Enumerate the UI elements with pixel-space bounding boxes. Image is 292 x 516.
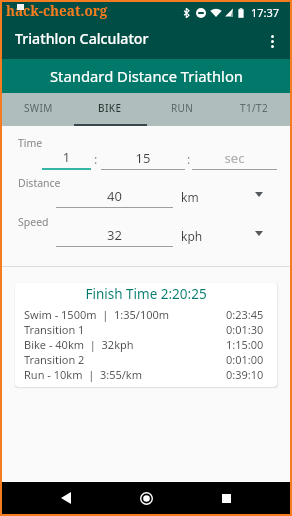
staticText: 15 <box>101 149 185 167</box>
button[interactable]: 15 <box>101 149 185 170</box>
staticText: Run - 10km | 3:55/km <box>24 367 143 382</box>
staticText: kph <box>181 228 203 244</box>
staticText: Distance <box>18 176 61 190</box>
staticText: 1 <box>42 148 91 166</box>
staticText: Time <box>18 136 43 150</box>
button[interactable]: BIKE <box>74 93 146 126</box>
staticText: 0:01:00 <box>226 352 264 367</box>
button[interactable]: SWIM <box>2 93 74 126</box>
staticText: 0:23:45 <box>226 307 264 322</box>
button[interactable]: Back <box>50 482 82 514</box>
button[interactable]: Open unit dropdown <box>240 184 278 204</box>
button[interactable]: Standard Distance Triathlon <box>2 59 290 93</box>
staticText: Transition 2 <box>24 352 85 367</box>
staticText: 32 <box>56 226 173 244</box>
button[interactable]: 40 <box>56 187 173 208</box>
staticText: : <box>187 151 191 167</box>
staticText: 0:39:10 <box>226 367 264 382</box>
staticText: BIKE <box>98 101 122 115</box>
staticText: Speed <box>18 215 49 229</box>
staticText: Transition 1 <box>24 322 85 337</box>
staticText: km <box>181 189 199 205</box>
button[interactable]: T1/T2 <box>218 93 290 126</box>
staticText: 1:15:00 <box>226 337 264 352</box>
button[interactable]: Finish Time 2:20:25 <box>15 283 277 387</box>
staticText: : <box>94 151 98 167</box>
staticText: Bike - 40km | 32kph <box>24 337 134 352</box>
staticText: Triathlon Calculator <box>15 29 149 48</box>
button[interactable]: 1 <box>42 148 91 170</box>
staticText: SWIM <box>24 101 53 115</box>
button[interactable]: RUN <box>146 93 218 126</box>
staticText: Swim - 1500m | 1:35/100m <box>24 307 170 322</box>
staticText: 40 <box>56 187 173 205</box>
button[interactable]: Open unit dropdown <box>240 223 278 243</box>
staticText: T1/T2 <box>240 101 269 115</box>
button[interactable]: Home <box>130 482 162 514</box>
staticText: 17:37 <box>251 5 280 20</box>
button[interactable]: Recent apps <box>210 482 242 514</box>
staticText: Standard Distance Triathlon <box>50 66 243 86</box>
button[interactable]: More options <box>254 23 290 59</box>
staticText: sec <box>192 149 277 167</box>
staticText: 0:01:30 <box>226 322 264 337</box>
button[interactable]: 32 <box>56 226 173 247</box>
staticText: hack-cheat.org <box>6 2 108 20</box>
staticText: Finish Time 2:20:25 <box>15 285 277 303</box>
button[interactable]: sec <box>192 149 277 170</box>
staticText: RUN <box>171 101 194 115</box>
